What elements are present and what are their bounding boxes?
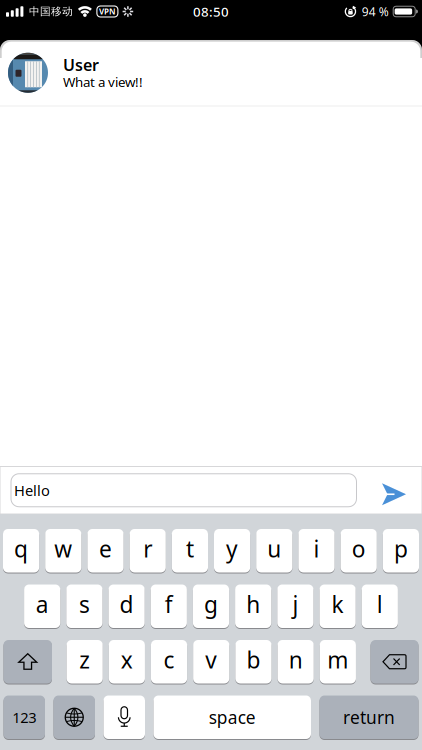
staticText: p <box>394 534 408 564</box>
button[interactable]: o <box>341 529 377 572</box>
button[interactable]: p <box>383 529 419 572</box>
button[interactable]: r <box>130 529 166 572</box>
staticText: t <box>186 534 194 564</box>
button[interactable]: t <box>172 529 208 572</box>
button[interactable]: k <box>319 584 356 628</box>
button[interactable]: v <box>193 640 229 683</box>
button[interactable]: f <box>151 584 187 628</box>
staticText: VPN <box>99 6 116 17</box>
staticText: What a view!! <box>63 73 143 91</box>
staticText: m <box>327 645 348 675</box>
staticText: r <box>143 534 152 564</box>
button[interactable]: m <box>320 640 356 683</box>
staticText: s <box>79 589 90 619</box>
staticText: space <box>209 706 256 729</box>
button[interactable]: l <box>362 584 398 628</box>
button[interactable] <box>103 695 145 739</box>
button[interactable]: i <box>298 529 335 572</box>
staticText: o <box>352 534 366 564</box>
button[interactable] <box>370 640 418 683</box>
staticText: x <box>121 645 133 675</box>
button[interactable]: 123 <box>3 695 45 739</box>
button[interactable]: d <box>108 584 145 628</box>
staticText: q <box>14 534 28 564</box>
button[interactable]: a <box>24 584 60 628</box>
button[interactable]: g <box>193 584 229 628</box>
button[interactable] <box>3 640 52 683</box>
button[interactable]: h <box>235 584 271 628</box>
button[interactable] <box>382 479 406 501</box>
staticText: User <box>63 54 99 75</box>
button[interactable]: c <box>151 640 187 683</box>
staticText: d <box>120 589 134 619</box>
staticText: 123 <box>12 707 36 727</box>
button[interactable]: Hello <box>11 474 356 507</box>
staticText: c <box>164 645 175 675</box>
button[interactable]: x <box>109 640 145 683</box>
button[interactable]: n <box>278 640 314 683</box>
staticText: h <box>246 589 260 619</box>
staticText: Hello <box>14 480 50 500</box>
staticText: u <box>267 534 281 564</box>
staticText: j <box>292 589 298 619</box>
button[interactable]: w <box>45 529 81 572</box>
button[interactable]: j <box>277 584 313 628</box>
staticText: l <box>377 589 383 619</box>
staticText: v <box>205 645 217 675</box>
staticText: return <box>343 706 395 729</box>
button[interactable]: z <box>67 640 103 683</box>
staticText: 中国移动 <box>29 5 73 18</box>
button[interactable]: y <box>214 529 250 572</box>
button[interactable] <box>53 695 95 739</box>
button[interactable]: q <box>3 529 39 572</box>
staticText: w <box>54 534 72 564</box>
staticText: f <box>165 589 173 619</box>
button[interactable]: u <box>256 529 292 572</box>
staticText: i <box>313 534 319 564</box>
button[interactable]: return <box>319 695 418 739</box>
staticText: k <box>332 589 344 619</box>
staticText: b <box>246 645 260 675</box>
staticText: 94 % <box>362 3 389 19</box>
button[interactable]: s <box>66 584 102 628</box>
button[interactable]: b <box>235 640 272 683</box>
staticText: a <box>36 589 49 619</box>
staticText: g <box>204 589 218 619</box>
staticText: z <box>79 645 90 675</box>
staticText: y <box>226 534 238 564</box>
button[interactable]: User <box>0 40 422 105</box>
staticText: e <box>99 534 112 564</box>
staticText: n <box>289 645 303 675</box>
button[interactable]: space <box>153 695 311 739</box>
staticText: 08:50 <box>193 3 229 20</box>
button[interactable]: e <box>87 529 124 572</box>
